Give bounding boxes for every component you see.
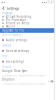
- button[interactable]: General settings: [0, 47, 56, 55]
- staticText: Files: [2, 55, 7, 58]
- staticText: Sound Quality: [2, 33, 21, 36]
- button[interactable]: Upgrade to Pro: [0, 28, 54, 33]
- button[interactable]: Google Drive Sync: [0, 69, 56, 77]
- staticText: Files settings: [6, 60, 24, 63]
- button[interactable]: Record on Sleep: [0, 22, 56, 25]
- staticText: Dropbox: [2, 78, 14, 81]
- button[interactable]: Dropbox: [0, 77, 56, 86]
- button[interactable]: Audio settings: [0, 36, 56, 44]
- button[interactable]: My Cell: [0, 25, 56, 28]
- button[interactable]: Back: [2, 6, 5, 10]
- staticText: Settings: [6, 6, 19, 11]
- button[interactable]: SD Card Recording: [0, 15, 56, 18]
- staticText: Cloud: [2, 65, 11, 69]
- staticText: Upgrade to Pro: [2, 29, 24, 32]
- staticText: My Cell: [6, 25, 16, 28]
- staticText: SD Card Recording: [6, 15, 32, 18]
- staticText: 9:41: [47, 1, 54, 4]
- staticText: General: [2, 44, 11, 47]
- staticText: Audio settings: [6, 38, 27, 42]
- staticText: Google Drive Sync: [2, 69, 27, 73]
- staticText: General settings: [6, 49, 29, 53]
- staticText: Automatically synchronized with Google: [2, 74, 44, 77]
- staticText: Record on Sleep: [6, 21, 30, 25]
- button[interactable]: File Protection: [0, 18, 56, 22]
- staticText: Playback: [2, 12, 12, 15]
- staticText: Automatically synchronized with Dropbox: [2, 82, 45, 85]
- button[interactable]: Files settings: [0, 58, 56, 65]
- staticText: File Protection: [6, 18, 27, 22]
